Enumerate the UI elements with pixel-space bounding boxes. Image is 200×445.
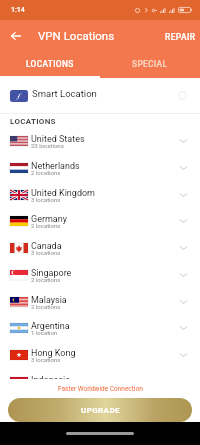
button[interactable]: Netherlands [0,155,200,181]
staticText: 2 locations [31,169,61,176]
button[interactable]: Germany [0,208,200,234]
button[interactable]: Smart Location [0,78,200,113]
button[interactable]: Indonesia [0,369,200,379]
staticText: United Kingdom [31,188,95,199]
button[interactable]: Hong Kong [0,342,200,368]
button[interactable]: United Kingdom [0,182,200,208]
staticText: SPECIAL [132,59,168,69]
staticText: 3 locations [31,249,61,256]
button[interactable]: Canada [0,235,200,261]
staticText: 3 locations [31,196,61,203]
button[interactable]: Malaysia [0,289,200,315]
staticText: 1:14 [11,6,25,14]
staticText: REPAIR [165,32,196,42]
staticText: LOCATIONS [26,59,74,69]
staticText: Canada [31,241,62,252]
staticText: 2 locations [31,303,61,310]
button[interactable]: United States [0,128,200,154]
staticText: Faster Worldwide Connection [58,385,143,393]
staticText: 2 locations [31,276,61,283]
button[interactable]: Singapore [0,262,200,288]
staticText: Smart Location [32,88,97,99]
staticText: Malaysia [31,295,67,306]
staticText: 23 locations [31,142,64,149]
staticText: Argentina [31,321,70,332]
button[interactable]: SPECIAL [100,56,200,78]
staticText: UPGRADE [81,406,120,415]
staticText: Indonesia [31,375,71,379]
button[interactable]: Back [0,20,32,52]
staticText: Germany [31,214,67,225]
button[interactable]: UPGRADE [8,398,192,422]
staticText: Hong Kong [31,348,76,359]
staticText: 2 locations [31,222,61,229]
staticText: United States [31,134,85,145]
button[interactable]: Argentina [0,315,200,341]
button[interactable]: REPAIR [159,23,200,49]
staticText: Singapore [31,268,72,279]
staticText: VPN Locations [38,29,115,42]
staticText: 3 locations [31,356,61,363]
staticText: LOCATIONS [10,117,56,126]
button[interactable]: LOCATIONS [0,56,100,78]
staticText: Netherlands [31,161,80,172]
staticText: 1 location [31,329,58,336]
